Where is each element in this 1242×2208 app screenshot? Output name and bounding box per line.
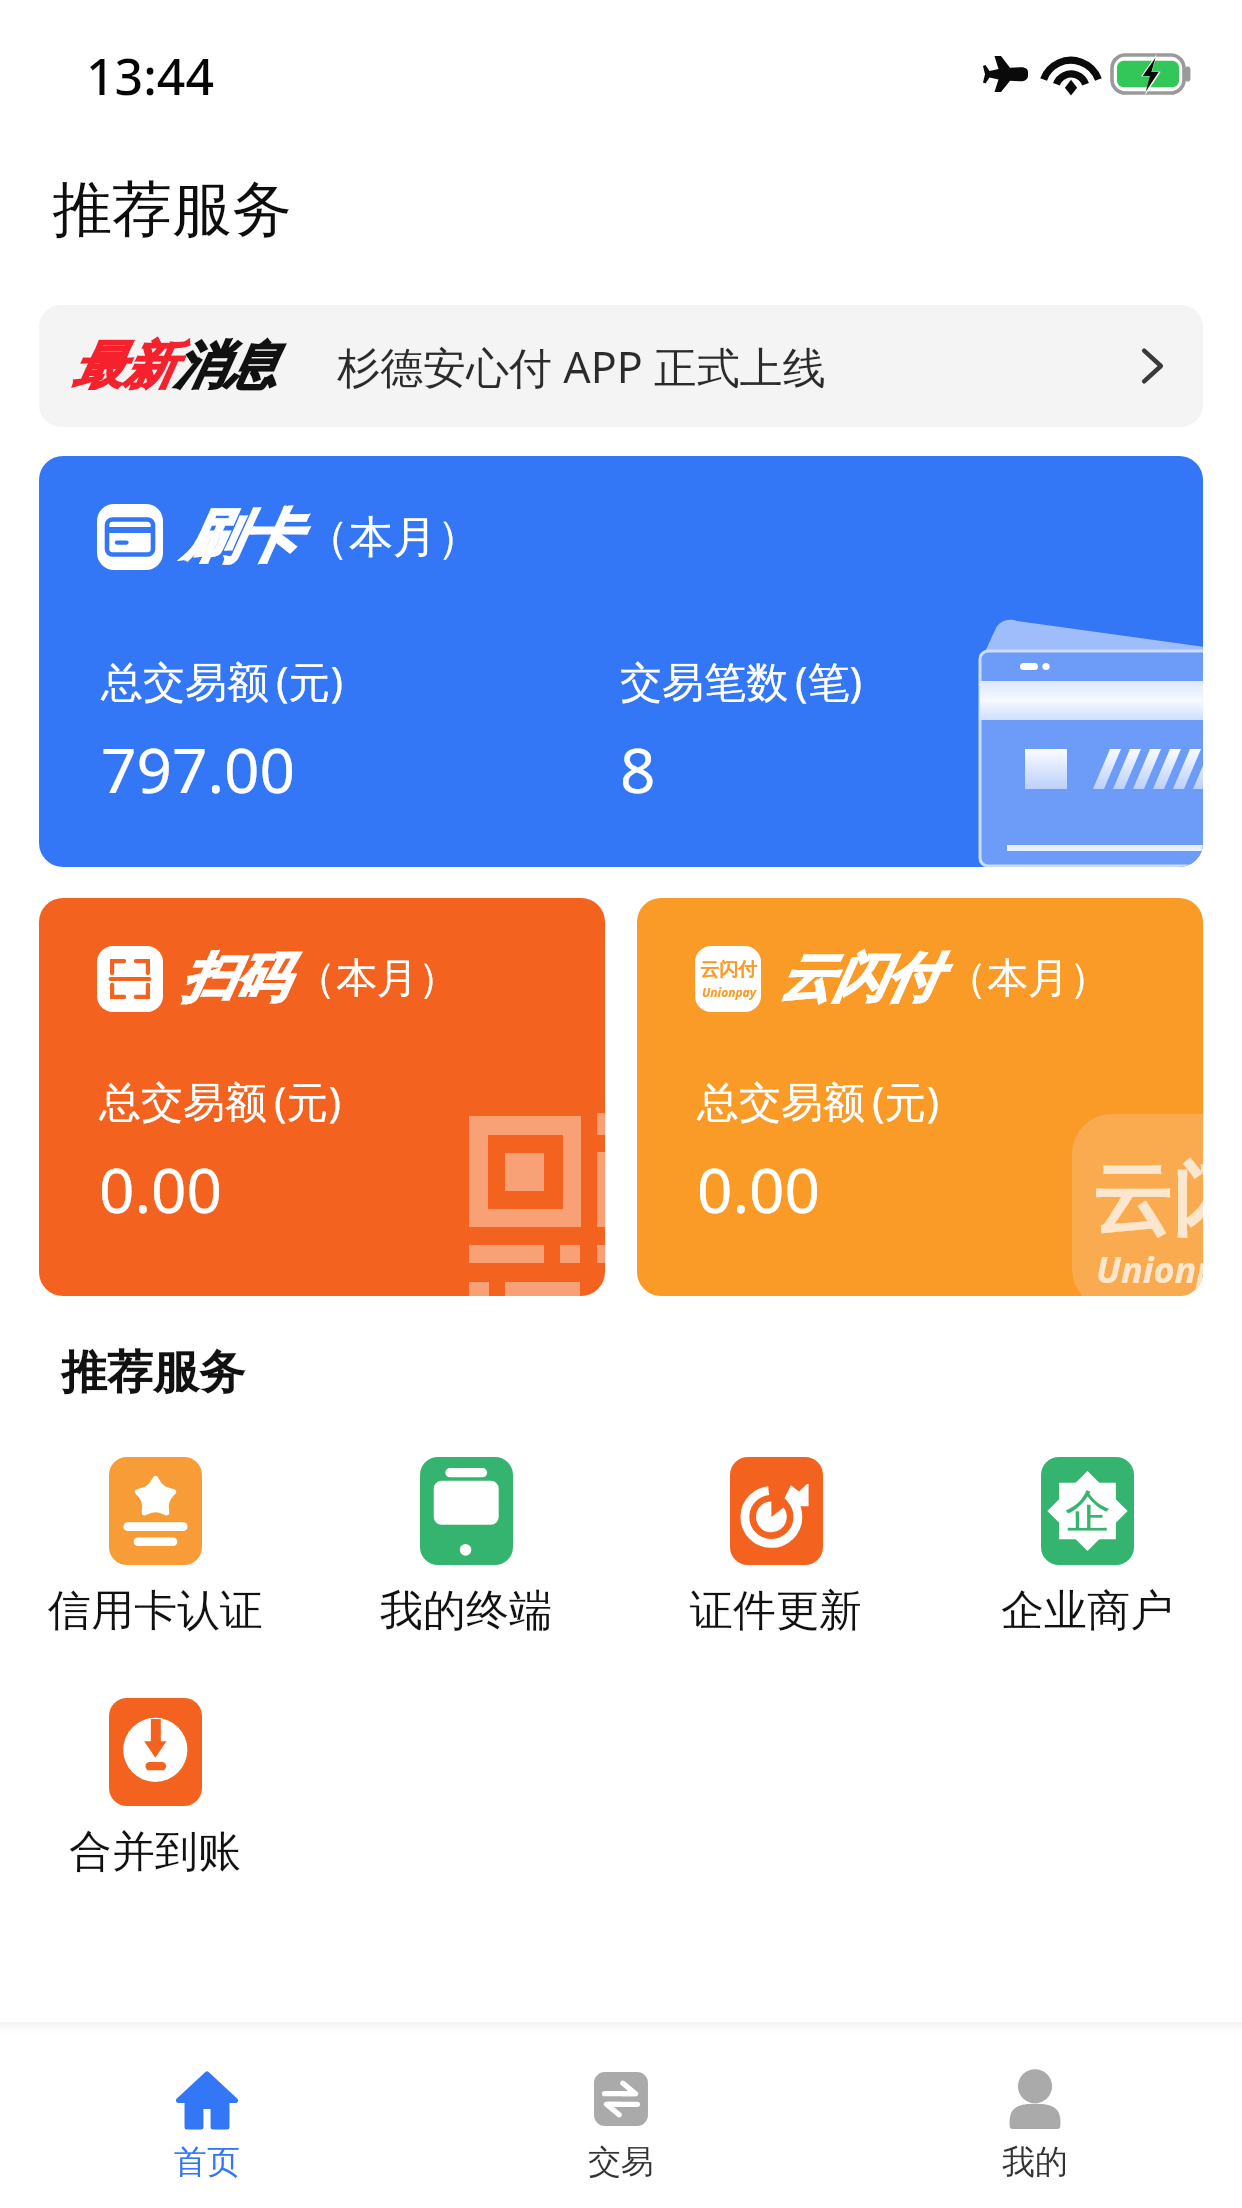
staticText: 0.00 <box>99 1147 223 1231</box>
staticText: 交易 <box>588 2141 654 2183</box>
staticText: 企业商户 <box>1001 1584 1173 1638</box>
staticText: Unionpay <box>1096 1245 1203 1294</box>
button[interactable]: 信用卡认证 <box>25 1443 285 1643</box>
staticText: （本月） <box>295 953 459 1005</box>
staticText: Unionpay <box>702 984 756 1000</box>
staticText: （本月） <box>946 953 1110 1005</box>
button[interactable]: 我的终端 <box>336 1443 596 1643</box>
button[interactable]: 扫码 <box>39 898 605 1296</box>
button[interactable]: 首页 <box>67 2036 347 2208</box>
staticText: 首页 <box>174 2141 240 2183</box>
other: Battery charging <box>1112 55 1192 93</box>
staticText: 消息 <box>174 334 276 398</box>
staticText: 信用卡认证 <box>48 1584 263 1638</box>
other: Open news <box>1142 349 1163 383</box>
staticText: （本月） <box>305 510 481 565</box>
button[interactable]: 证件更新 <box>646 1443 906 1643</box>
staticText: 云闪付 <box>700 958 757 982</box>
staticText: 我的终端 <box>380 1584 552 1638</box>
button[interactable]: 企 <box>957 1443 1217 1643</box>
button[interactable]: 合并到账 <box>25 1684 285 1884</box>
staticText: 云闪付 <box>779 945 938 1012</box>
staticText: 总交易额 (元) <box>101 652 344 709</box>
staticText: 证件更新 <box>690 1584 862 1638</box>
staticText: 13:44 <box>86 42 214 110</box>
button[interactable]: 交易 <box>481 2036 761 2208</box>
staticText: 最新 <box>72 334 174 398</box>
staticText: 0.00 <box>697 1147 821 1231</box>
staticText: 推荐服务 <box>61 1344 245 1402</box>
staticText: 扫码 <box>181 945 287 1012</box>
staticText: 刷卡 <box>183 501 297 573</box>
staticText: 企 <box>1065 1483 1111 1541</box>
staticText: 推荐服务 <box>52 172 292 248</box>
other: Airplane mode <box>983 55 1028 92</box>
staticText: 我的 <box>1002 2141 1068 2183</box>
staticText: 797.00 <box>101 727 295 811</box>
button[interactable]: 云闪付 <box>637 898 1203 1296</box>
staticText: 云闪付 <box>1092 1150 1203 1251</box>
staticText: 总交易额 (元) <box>99 1072 342 1129</box>
button[interactable]: 我的 <box>895 2036 1175 2208</box>
other: Wi-Fi <box>1047 56 1095 92</box>
staticText: 合并到账 <box>69 1825 241 1879</box>
staticText: 交易笔数 (笔) <box>620 652 863 709</box>
button[interactable]: 刷卡 <box>39 456 1203 867</box>
button[interactable]: 最新 <box>39 305 1203 427</box>
staticText: 杉德安心付 APP 正式上线 <box>337 337 826 396</box>
staticText: 8 <box>620 727 656 811</box>
staticText: 总交易额 (元) <box>697 1072 940 1129</box>
